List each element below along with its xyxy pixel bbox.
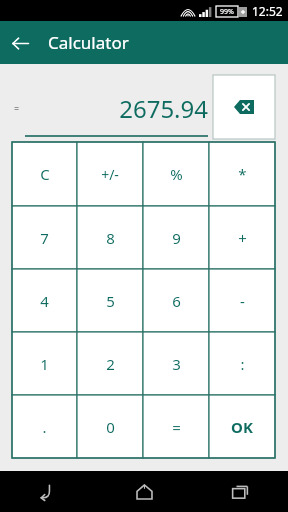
button[interactable]: OK — [209, 395, 275, 458]
button[interactable]: 6 — [143, 269, 209, 332]
button[interactable]: 7 — [12, 206, 77, 269]
staticText: +/- — [101, 165, 119, 184]
button[interactable]: . — [12, 395, 77, 458]
button[interactable]: : — [209, 332, 275, 395]
staticText: 12:52 — [252, 3, 283, 19]
staticText: = — [14, 102, 20, 114]
button[interactable]: Back — [0, 23, 40, 63]
staticText: OK — [231, 417, 253, 437]
button[interactable]: 3 — [143, 332, 209, 395]
button[interactable]: Backspace — [213, 75, 275, 139]
staticText: 8 — [106, 228, 115, 248]
button[interactable]: +/- — [77, 142, 143, 206]
staticText: 4 — [40, 291, 49, 311]
button[interactable]: = — [143, 395, 209, 458]
button[interactable]: Home — [120, 471, 168, 512]
button[interactable]: - — [209, 269, 275, 332]
staticText: 99% — [220, 7, 234, 17]
staticText: 5 — [106, 291, 115, 311]
staticText: . — [42, 417, 47, 437]
button[interactable]: + — [209, 206, 275, 269]
staticText: 3 — [172, 354, 181, 374]
button[interactable]: 8 — [77, 206, 143, 269]
staticText: 9 — [172, 228, 181, 248]
staticText: 2675.94 — [12, 92, 208, 125]
button[interactable]: % — [143, 142, 209, 206]
button[interactable]: 2 — [77, 332, 143, 395]
staticText: 2 — [106, 354, 115, 374]
staticText: 0 — [106, 417, 115, 437]
staticText: Calculator — [48, 31, 129, 54]
staticText: % — [170, 164, 183, 184]
button[interactable]: Recent apps — [216, 471, 264, 512]
staticText: 6 — [172, 291, 181, 311]
button[interactable]: C — [12, 142, 77, 206]
button[interactable]: 9 — [143, 206, 209, 269]
button[interactable]: 0 — [77, 395, 143, 458]
staticText: = — [172, 417, 181, 437]
button[interactable]: 5 — [77, 269, 143, 332]
button[interactable]: * — [209, 142, 275, 206]
button[interactable]: Back — [24, 471, 72, 512]
button[interactable]: 4 — [12, 269, 77, 332]
staticText: 7 — [40, 228, 49, 248]
staticText: - — [240, 291, 245, 311]
button[interactable]: 1 — [12, 332, 77, 395]
staticText: + — [238, 228, 247, 248]
staticText: : — [240, 354, 245, 374]
staticText: 1 — [40, 354, 49, 374]
staticText: * — [238, 164, 247, 184]
staticText: C — [40, 164, 50, 184]
